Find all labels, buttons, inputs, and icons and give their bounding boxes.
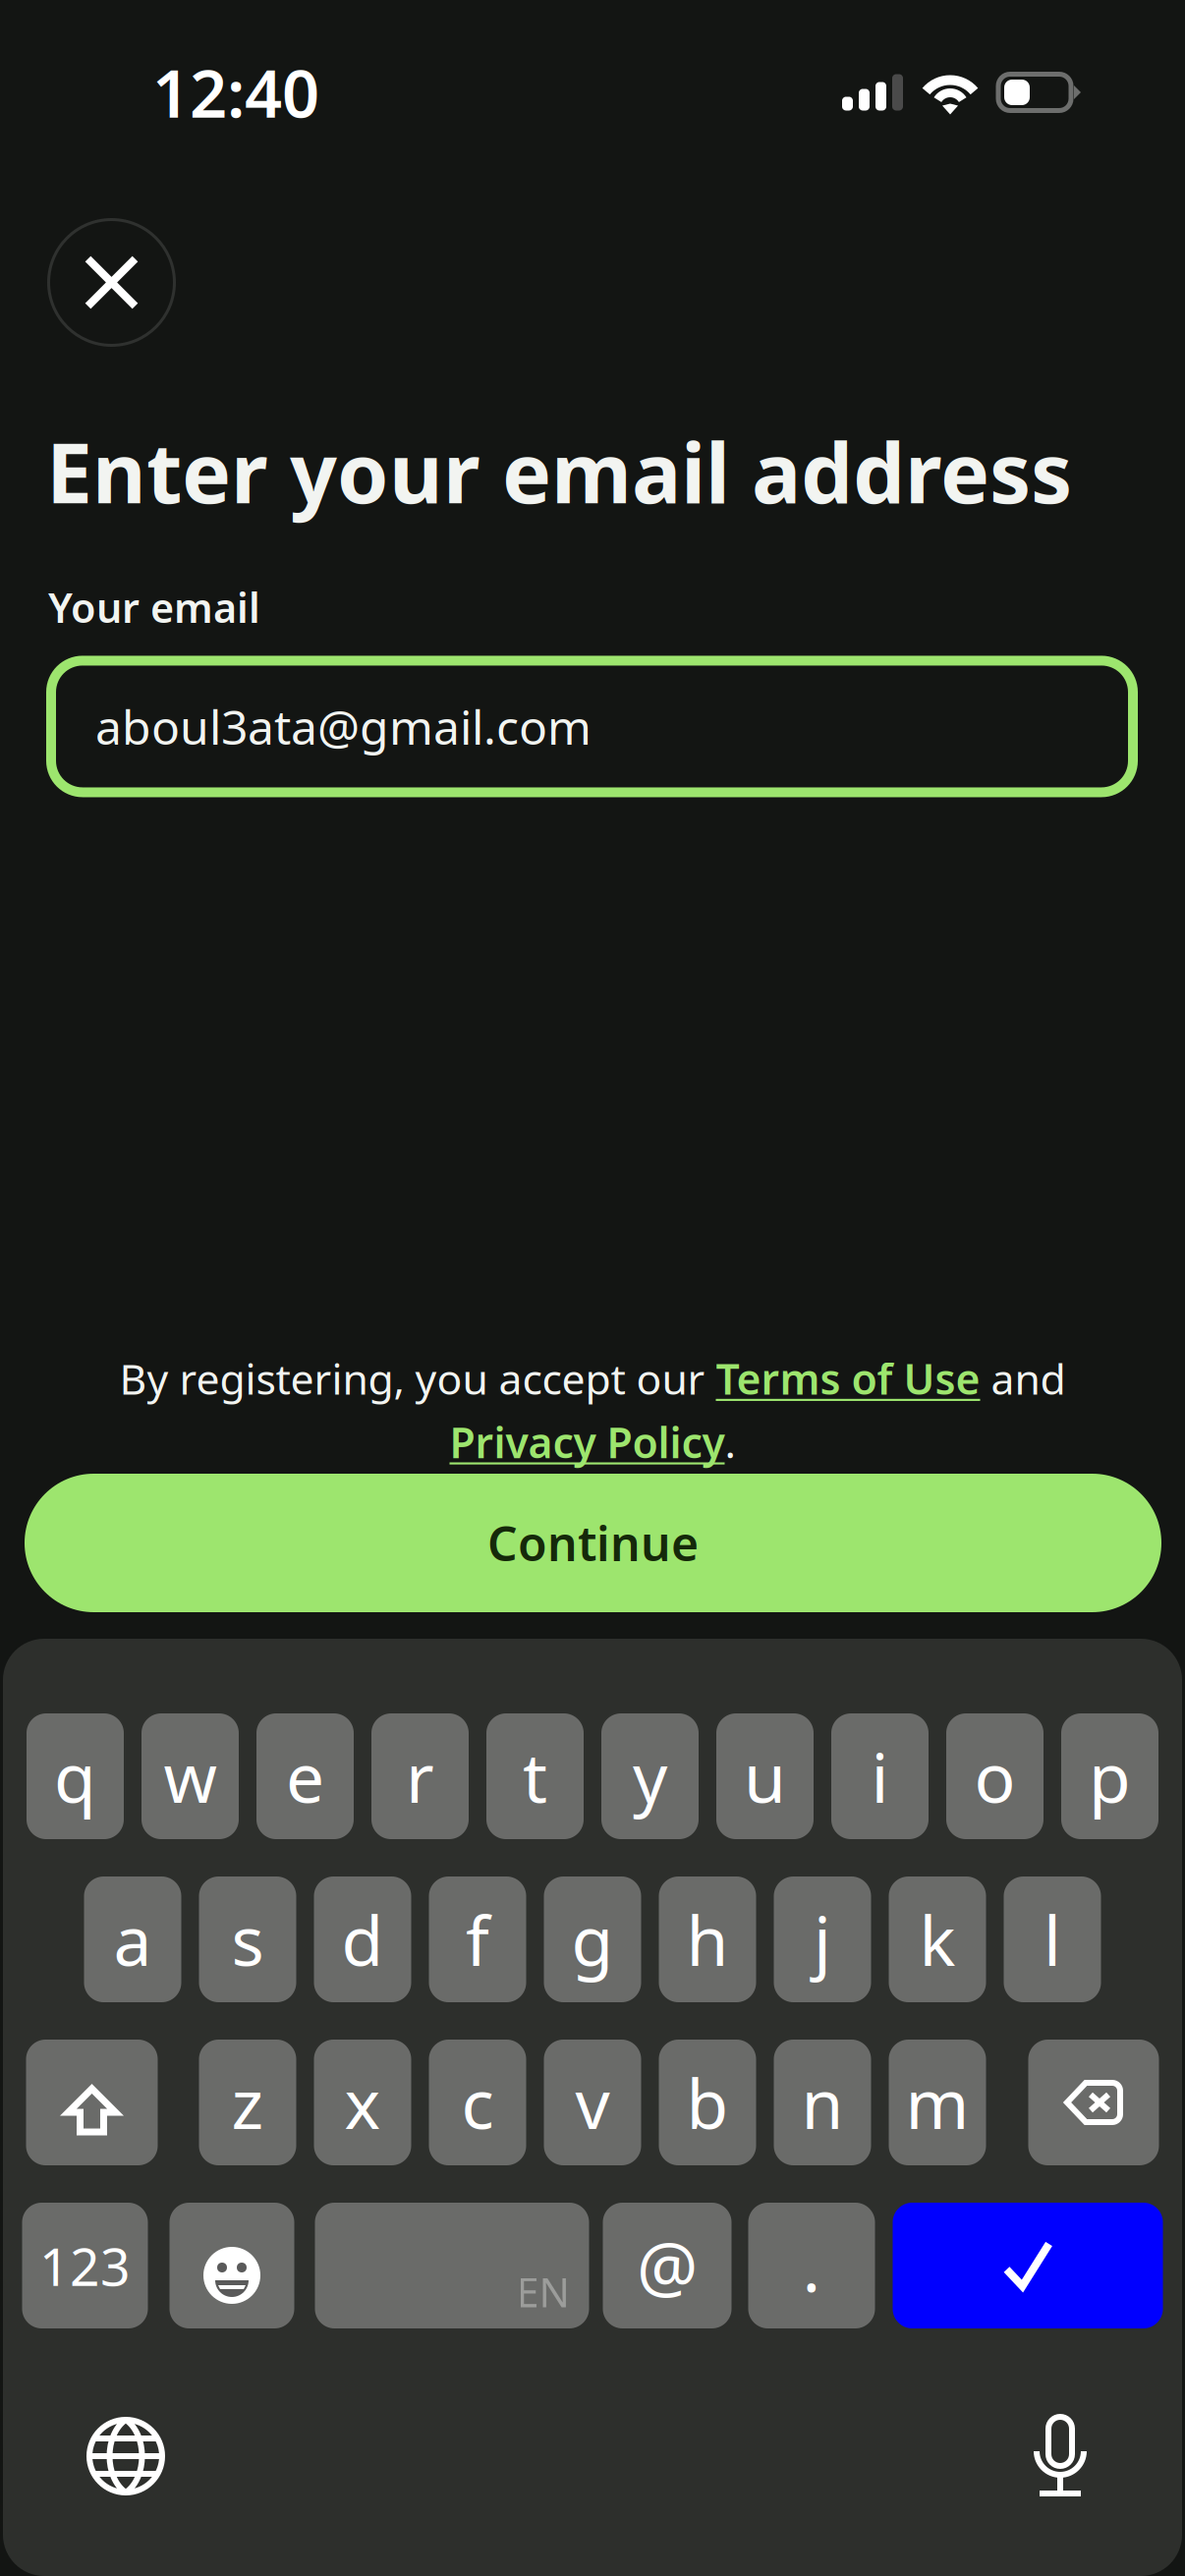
staticText: Enter your email address — [46, 417, 1072, 526]
staticText: h — [686, 1894, 729, 1985]
staticText: EN — [516, 2265, 569, 2319]
button[interactable]: l — [1004, 1876, 1101, 2002]
staticText: n — [801, 2057, 844, 2148]
staticText: Terms of Use — [716, 1351, 980, 1406]
staticText: x — [344, 2057, 381, 2148]
staticText: m — [905, 2057, 969, 2148]
button[interactable]: u — [716, 1713, 814, 1839]
staticText: 123 — [39, 2231, 131, 2300]
button[interactable]: v — [544, 2040, 641, 2165]
staticText: . — [802, 2220, 821, 2311]
button[interactable]: q — [27, 1713, 124, 1839]
button[interactable]: z — [199, 2040, 296, 2165]
staticText: and — [980, 1351, 1066, 1406]
button[interactable]: g — [544, 1876, 641, 2002]
staticText: d — [341, 1894, 384, 1985]
staticText: i — [871, 1731, 889, 1822]
staticText: Your email — [48, 580, 260, 634]
button[interactable]: y — [601, 1713, 699, 1839]
button[interactable]: d — [314, 1876, 411, 2002]
button[interactable]: n — [774, 2040, 871, 2165]
button[interactable]: Shift — [26, 2040, 158, 2165]
staticText: y — [633, 1731, 667, 1822]
button[interactable]: e — [256, 1713, 354, 1839]
button[interactable]: Continue — [25, 1474, 1161, 1612]
staticText: j — [814, 1894, 831, 1985]
staticText: z — [231, 2057, 264, 2148]
staticText: p — [1089, 1731, 1131, 1822]
staticText: g — [571, 1894, 614, 1985]
button[interactable]: Space — [315, 2203, 589, 2328]
staticText: k — [919, 1894, 956, 1985]
button[interactable]: s — [199, 1876, 296, 2002]
staticText: s — [231, 1894, 264, 1985]
button[interactable]: Next keyboard — [86, 2417, 165, 2495]
button[interactable]: 123 — [22, 2203, 148, 2328]
button[interactable]: o — [946, 1713, 1044, 1839]
button[interactable]: p — [1061, 1713, 1158, 1839]
staticText: . — [725, 1414, 735, 1470]
staticText: By registering, you accept our — [119, 1351, 716, 1406]
staticText: aboul3ata@gmail.com — [95, 695, 592, 758]
staticText: r — [406, 1731, 434, 1822]
button[interactable]: k — [889, 1876, 986, 2002]
button[interactable]: x — [314, 2040, 411, 2165]
staticText: 12:40 — [152, 49, 319, 136]
staticText: u — [744, 1731, 786, 1822]
staticText: @ — [637, 2220, 698, 2311]
button[interactable]: a — [84, 1876, 181, 2002]
staticText: o — [974, 1731, 1016, 1822]
button[interactable]: Dictate — [1033, 2414, 1088, 2498]
button[interactable]: i — [831, 1713, 929, 1839]
button[interactable]: h — [659, 1876, 756, 2002]
staticText: q — [54, 1731, 96, 1822]
button[interactable]: m — [889, 2040, 986, 2165]
staticText: b — [686, 2057, 729, 2148]
staticText: e — [286, 1731, 324, 1822]
staticText: Continue — [487, 1512, 699, 1574]
staticText: c — [461, 2057, 494, 2148]
staticText: a — [113, 1894, 152, 1985]
button[interactable]: Delete — [1028, 2040, 1159, 2165]
button[interactable]: Return — [893, 2203, 1163, 2328]
button[interactable]: r — [371, 1713, 469, 1839]
staticText: f — [466, 1894, 489, 1985]
button[interactable]: @ — [603, 2203, 732, 2328]
button[interactable]: t — [486, 1713, 584, 1839]
button[interactable]: f — [429, 1876, 526, 2002]
button[interactable]: w — [141, 1713, 239, 1839]
button[interactable]: Close — [47, 218, 176, 347]
button[interactable]: Terms of Use — [716, 1351, 980, 1406]
staticText: v — [575, 2057, 610, 2148]
staticText: l — [1044, 1894, 1061, 1985]
staticText: Privacy Policy — [450, 1414, 725, 1470]
button[interactable]: . — [748, 2203, 875, 2328]
button[interactable]: j — [774, 1876, 871, 2002]
button[interactable]: b — [659, 2040, 756, 2165]
staticText: t — [523, 1731, 547, 1822]
staticText: w — [164, 1731, 217, 1822]
button[interactable]: Emoji — [169, 2203, 294, 2328]
button[interactable]: Privacy Policy — [450, 1414, 725, 1470]
button[interactable]: c — [429, 2040, 526, 2165]
